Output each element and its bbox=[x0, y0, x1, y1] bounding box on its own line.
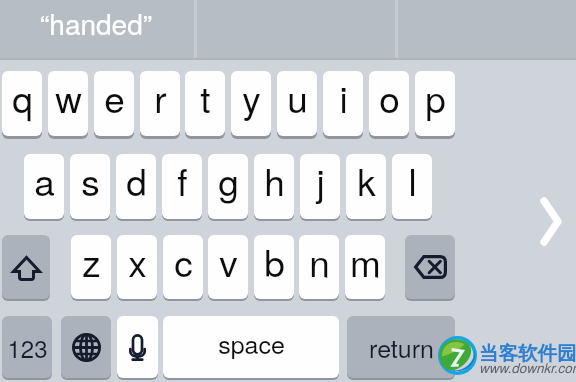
staticText: space bbox=[218, 325, 285, 361]
button[interactable]: w bbox=[48, 71, 88, 136]
button[interactable]: l bbox=[392, 154, 432, 219]
staticText: p bbox=[425, 71, 446, 124]
button[interactable]: z bbox=[71, 235, 111, 299]
staticText: g bbox=[218, 154, 239, 207]
button[interactable]: u bbox=[277, 71, 317, 136]
button[interactable]: x bbox=[117, 235, 157, 299]
button[interactable]: e bbox=[94, 71, 134, 136]
staticText: h bbox=[264, 154, 285, 207]
staticText: j bbox=[316, 154, 325, 207]
button[interactable]: f bbox=[162, 154, 202, 219]
staticText: u bbox=[287, 71, 308, 124]
button[interactable]: v bbox=[208, 235, 248, 299]
staticText: b bbox=[264, 235, 285, 288]
staticText: e bbox=[104, 71, 125, 124]
staticText: “handed” bbox=[40, 3, 153, 43]
button[interactable]: 123 bbox=[2, 316, 52, 378]
staticText: c bbox=[174, 235, 193, 288]
button[interactable]: b bbox=[254, 235, 294, 299]
button[interactable]: k bbox=[346, 154, 386, 219]
staticText: y bbox=[242, 71, 261, 124]
staticText: q bbox=[12, 71, 33, 124]
button[interactable]: y bbox=[231, 71, 271, 136]
button[interactable]: a bbox=[24, 154, 64, 219]
staticText: r bbox=[154, 71, 167, 124]
button[interactable]: s bbox=[70, 154, 110, 219]
button[interactable]: h bbox=[254, 154, 294, 219]
button[interactable]: i bbox=[323, 71, 363, 136]
staticText: i bbox=[339, 71, 348, 124]
button[interactable]: o bbox=[369, 71, 409, 136]
staticText: l bbox=[408, 154, 417, 207]
staticText: d bbox=[126, 154, 147, 207]
button[interactable]: g bbox=[208, 154, 248, 219]
staticText: z bbox=[82, 235, 101, 288]
button[interactable]: n bbox=[299, 235, 339, 299]
staticText: 123 bbox=[7, 330, 48, 364]
staticText: f bbox=[177, 154, 188, 207]
button[interactable]: t bbox=[185, 71, 225, 136]
button[interactable]: Next keyboard bbox=[61, 316, 111, 378]
button[interactable]: m bbox=[345, 235, 385, 299]
button[interactable]: q bbox=[2, 71, 42, 136]
staticText: o bbox=[379, 71, 400, 124]
button[interactable]: Dictation bbox=[117, 316, 158, 378]
button[interactable]: Delete bbox=[405, 235, 455, 299]
staticText: k bbox=[357, 154, 376, 207]
button[interactable]: Shift bbox=[2, 235, 50, 299]
staticText: x bbox=[128, 235, 147, 288]
button[interactable]: “handed” bbox=[0, 0, 193, 58]
button[interactable]: r bbox=[140, 71, 180, 136]
staticText: 当客软件园 bbox=[479, 341, 576, 366]
button[interactable]: p bbox=[415, 71, 455, 136]
button[interactable]: c bbox=[163, 235, 203, 299]
button[interactable]: space bbox=[163, 316, 339, 378]
staticText: a bbox=[34, 154, 55, 207]
staticText: v bbox=[219, 235, 238, 288]
button[interactable]: d bbox=[116, 154, 156, 219]
staticText: t bbox=[200, 71, 211, 124]
staticText: return bbox=[369, 329, 434, 365]
staticText: www.downkr.com bbox=[479, 358, 576, 377]
button[interactable]: j bbox=[300, 154, 340, 219]
staticText: s bbox=[81, 154, 100, 207]
staticText: m bbox=[350, 235, 381, 288]
button[interactable]: return bbox=[347, 316, 455, 378]
staticText: n bbox=[309, 235, 330, 288]
staticText: w bbox=[55, 71, 82, 124]
